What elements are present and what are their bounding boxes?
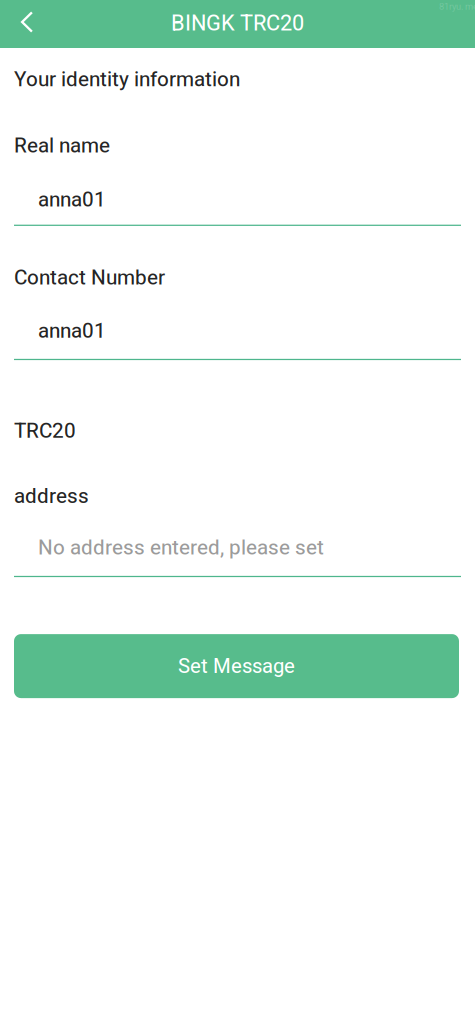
staticText: Set Message — [178, 654, 295, 678]
staticText: anna01 — [38, 319, 106, 343]
staticText: Your identity information — [14, 67, 240, 91]
staticText: TRC20 — [14, 419, 76, 443]
staticText: BINGK TRC20 — [171, 10, 304, 36]
staticText: No address entered, please set — [38, 535, 324, 560]
staticText: Contact Number — [14, 265, 165, 290]
staticText: Real name — [14, 133, 110, 157]
button[interactable]: Set Message — [14, 634, 459, 698]
staticText: anna01 — [38, 187, 106, 212]
button[interactable]: Back — [0, 0, 49, 48]
staticText: 81ryu. me — [439, 1, 475, 12]
staticText: address — [14, 484, 89, 508]
